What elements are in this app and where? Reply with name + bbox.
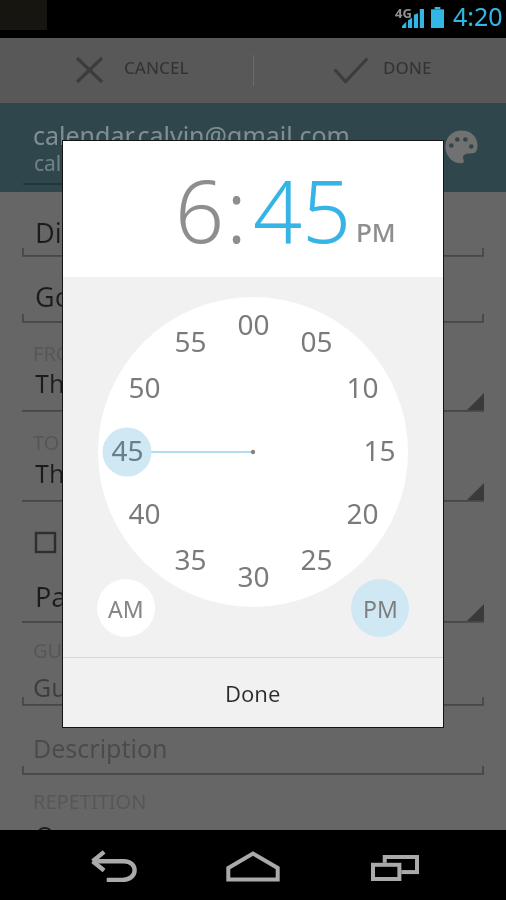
- staticText: TO: [33, 429, 60, 456]
- staticText: 15: [363, 431, 396, 469]
- button[interactable]: 20: [335, 492, 389, 534]
- button[interactable]: Recent apps: [336, 840, 454, 900]
- button[interactable]: PM: [351, 579, 409, 637]
- staticText: CANCEL: [124, 56, 189, 79]
- button[interactable]: AM: [97, 579, 155, 637]
- staticText: FROM: [33, 340, 90, 367]
- button[interactable]: Home: [193, 840, 311, 900]
- staticText: 6: [175, 151, 225, 268]
- staticText: :: [226, 151, 247, 268]
- button[interactable]: 35: [163, 538, 217, 580]
- staticText: 10: [346, 368, 379, 406]
- staticText: 00: [237, 305, 270, 343]
- staticText: Once: [35, 818, 97, 852]
- staticText: GUESTS: [33, 637, 107, 664]
- button[interactable]: Done: [63, 658, 443, 727]
- staticText: PM: [356, 214, 396, 249]
- button[interactable]: 30: [226, 555, 280, 597]
- staticText: 45: [253, 151, 352, 268]
- button[interactable]: 05: [289, 320, 343, 362]
- staticText: 30: [237, 557, 270, 595]
- staticText: Done: [225, 678, 281, 708]
- staticText: AM: [108, 593, 144, 624]
- staticText: 4:20: [453, 0, 503, 33]
- button[interactable]: 10: [335, 366, 389, 408]
- staticText: Pacific Time: [35, 578, 186, 615]
- button[interactable]: CANCEL: [77, 38, 189, 103]
- button[interactable]: 40: [117, 492, 171, 534]
- staticText: 50: [128, 368, 161, 406]
- staticText: 20: [346, 494, 379, 532]
- staticText: DONE: [383, 56, 432, 79]
- staticText: 55: [174, 322, 207, 360]
- staticText: 40: [128, 494, 161, 532]
- staticText: 25: [300, 540, 333, 578]
- button[interactable]: 45: [100, 429, 154, 471]
- staticText: PM: [363, 593, 398, 624]
- staticText: 4G: [395, 4, 412, 22]
- button[interactable]: DONE: [330, 38, 432, 103]
- staticText: Description: [33, 731, 168, 765]
- staticText: Golden Gate Park: [35, 278, 258, 315]
- staticText: 35: [174, 540, 207, 578]
- staticText: Dinner: [35, 214, 122, 251]
- staticText: calendar.calvin@gmail.com: [33, 118, 350, 152]
- button[interactable]: 25: [289, 538, 343, 580]
- staticText: 05: [300, 322, 333, 360]
- staticText: ALL DAY: [64, 530, 141, 557]
- staticText: Guests: [33, 670, 114, 704]
- staticText: calendar.calvin@gmail.com: [34, 149, 301, 178]
- button[interactable]: 15: [352, 429, 406, 471]
- button[interactable]: 00: [226, 303, 280, 345]
- button[interactable]: Calendar colour: [444, 129, 479, 164]
- button[interactable]: Back: [55, 840, 173, 900]
- button[interactable]: 55: [163, 320, 217, 362]
- staticText: Thu, Aug 8, 2013: [35, 366, 232, 400]
- staticText: 45: [111, 431, 144, 469]
- staticText: Thu, Aug 8, 2013: [35, 456, 232, 490]
- staticText: REPETITION: [33, 788, 147, 815]
- button[interactable]: 50: [117, 366, 171, 408]
